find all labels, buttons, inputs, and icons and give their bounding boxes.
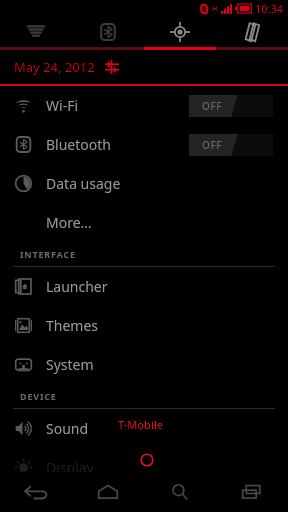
button[interactable]: Search [144,472,216,512]
staticText: Wi-Fi [46,96,79,115]
button[interactable]: Off [189,134,273,156]
button[interactable]: Home [72,472,144,512]
staticText: T-Mobile [118,417,164,432]
button[interactable]: Recents [216,472,288,512]
button[interactable]: Wi-Fi [0,86,288,125]
staticText: Sound [46,419,89,438]
staticText: INTERFACE [20,248,76,260]
staticText: OFF [202,99,223,113]
button[interactable]: Data usage [0,164,288,203]
button[interactable]: Off [189,95,273,117]
button[interactable]: Device [216,16,288,47]
button[interactable]: Back [0,472,72,512]
staticText: Display [46,458,94,477]
staticText: May 24, 2012 [14,58,95,76]
staticText: 10:34 [255,1,284,16]
staticText: Bluetooth [46,135,111,154]
button[interactable]: Location [144,16,216,47]
staticText: DEVICE [20,390,57,402]
staticText: OFF [202,138,223,152]
button[interactable]: More… [0,203,288,242]
button[interactable]: Bluetooth [72,16,144,47]
button[interactable]: Sound [0,409,288,448]
button[interactable]: Display [0,448,288,487]
button[interactable]: May 24, 2012 [0,50,288,84]
staticText: Themes [46,316,99,335]
staticText: Launcher [46,277,108,296]
button[interactable]: Themes [0,306,288,345]
staticText: More… [46,213,92,232]
button[interactable]: Wireless and networks [0,16,72,47]
staticText: System [46,355,94,374]
staticText: H [212,4,218,14]
button[interactable]: Launcher [0,267,288,306]
staticText: Data usage [46,174,121,193]
button[interactable]: System [0,345,288,384]
button[interactable]: Bluetooth [0,125,288,164]
